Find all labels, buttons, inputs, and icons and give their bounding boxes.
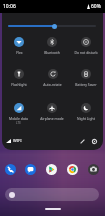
button[interactable]: Night Light bbox=[69, 103, 103, 135]
staticText: Flex bbox=[16, 50, 23, 55]
button[interactable] bbox=[8, 21, 96, 31]
button[interactable]: Messages bbox=[25, 164, 36, 175]
button[interactable]: Phone bbox=[5, 164, 16, 175]
staticText: Airplane mode bbox=[40, 116, 64, 121]
button[interactable]: Settings bbox=[89, 136, 99, 146]
button[interactable]: Camera bbox=[88, 164, 99, 175]
button[interactable]: Play Store bbox=[46, 164, 57, 175]
staticText: Bluetooth bbox=[44, 50, 60, 55]
staticText: Night Light bbox=[77, 116, 95, 121]
button[interactable]: Mobile data bbox=[2, 103, 35, 135]
button[interactable]: Battery Saver bbox=[69, 69, 103, 103]
button[interactable]: Edit bbox=[77, 136, 87, 146]
staticText: Auto-rotate bbox=[43, 82, 62, 87]
staticText: 60% bbox=[91, 3, 101, 10]
button[interactable]: Chrome bbox=[67, 164, 78, 175]
button[interactable]: Flashlight bbox=[2, 69, 35, 103]
button[interactable]: Flex bbox=[2, 37, 35, 69]
button[interactable] bbox=[5, 188, 99, 201]
staticText: WIFI bbox=[13, 138, 22, 143]
button[interactable]: Bluetooth bbox=[35, 37, 69, 69]
button[interactable]: Auto-rotate bbox=[35, 69, 69, 103]
staticText: Mobile data bbox=[9, 116, 28, 121]
staticText: Do not disturb bbox=[74, 50, 98, 55]
staticText: 10:06 bbox=[3, 3, 16, 10]
staticText: LTE bbox=[16, 121, 21, 125]
staticText: Flashlight bbox=[11, 82, 27, 87]
button[interactable]: Airplane mode bbox=[35, 103, 69, 135]
staticText: Battery Saver bbox=[75, 82, 97, 87]
button[interactable]: Do not disturb bbox=[69, 37, 103, 69]
